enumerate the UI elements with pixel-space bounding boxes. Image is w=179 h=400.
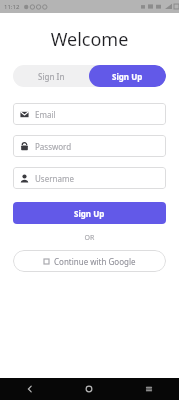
staticText: OR (0, 233, 179, 243)
staticText: Welcome (0, 27, 179, 52)
staticText: Sign Up (74, 208, 105, 219)
staticText: Password (35, 141, 72, 152)
button[interactable]: Password (13, 135, 166, 157)
staticText: Sign Up (112, 71, 143, 82)
button[interactable]: Sign Up (13, 202, 166, 224)
staticText: Email (35, 109, 56, 120)
button[interactable]: Continue with Google (13, 250, 166, 272)
button[interactable]: Sign Up (89, 65, 166, 87)
button[interactable]: Back (0, 378, 59, 400)
staticText: Username (35, 173, 74, 184)
staticText: 11:12 (4, 3, 20, 11)
button[interactable]: Sign In (13, 65, 89, 87)
button[interactable]: Home (59, 378, 119, 400)
button[interactable]: Recent apps (119, 378, 179, 400)
staticText: Sign In (38, 71, 65, 82)
button[interactable]: Email (13, 103, 166, 125)
staticText: Continue with Google (54, 256, 136, 267)
button[interactable]: Username (13, 167, 166, 189)
